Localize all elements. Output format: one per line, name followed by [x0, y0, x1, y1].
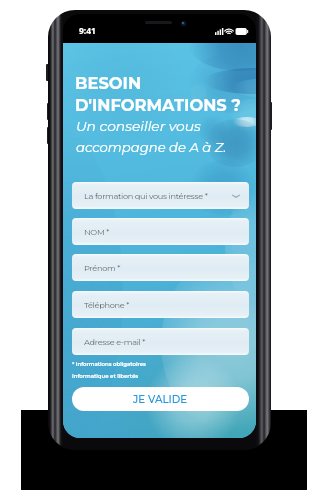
staticText: La formation qui vous intéresse * — [84, 191, 208, 201]
button[interactable]: La formation qui vous intéresse * — [72, 182, 249, 209]
other: Ouvrir la liste — [232, 192, 240, 200]
staticText: BESOIN — [75, 73, 142, 93]
button[interactable]: Téléphone * — [72, 291, 249, 318]
staticText: NOM * — [84, 227, 110, 237]
button[interactable]: JE VALIDE — [72, 387, 249, 411]
staticText: Prénom * — [84, 263, 121, 273]
staticText: accompagne de A à Z. — [76, 139, 227, 155]
staticText: JE VALIDE — [133, 393, 188, 406]
button[interactable]: NOM * — [72, 218, 249, 245]
staticText: * Informations obligatoires — [72, 361, 146, 368]
staticText: Informatique et libertés — [72, 373, 139, 380]
button[interactable]: Prénom * — [72, 254, 249, 281]
staticText: Téléphone * — [84, 300, 130, 310]
button[interactable]: Adresse e-mail * — [72, 328, 249, 355]
staticText: D'INFORMATIONS ? — [75, 95, 241, 115]
staticText: 9:41 — [79, 25, 96, 37]
staticText: Adresse e-mail * — [84, 337, 146, 347]
staticText: Un conseiller vous — [76, 118, 201, 135]
